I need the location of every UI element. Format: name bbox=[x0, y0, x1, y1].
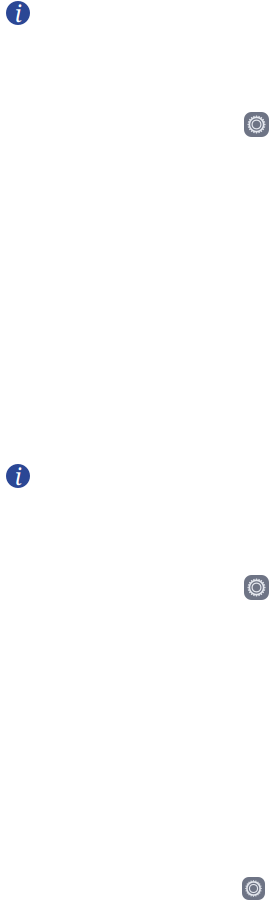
staticText: i bbox=[14, 460, 21, 492]
staticText: i bbox=[14, 0, 21, 29]
button[interactable]: Information bbox=[6, 464, 30, 488]
button[interactable]: Settings bbox=[244, 112, 269, 137]
button[interactable]: Settings bbox=[242, 877, 265, 900]
button[interactable]: Information bbox=[6, 1, 30, 25]
button[interactable]: Settings bbox=[244, 575, 269, 600]
